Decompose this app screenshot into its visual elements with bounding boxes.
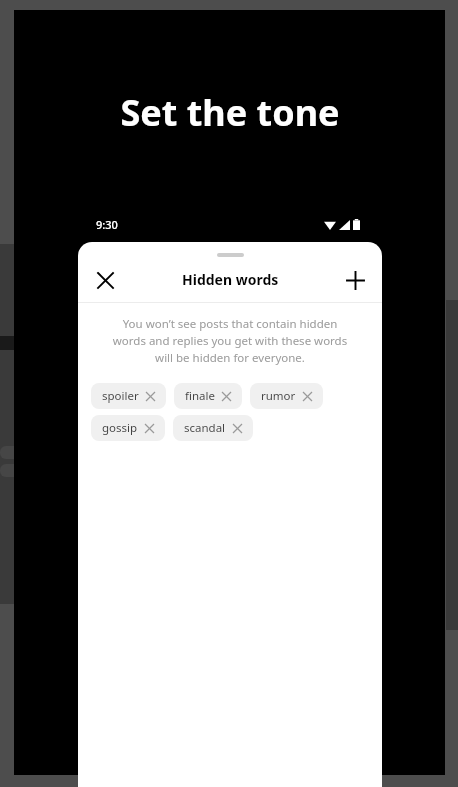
staticText: 9:30 xyxy=(96,217,118,232)
button[interactable]: Close xyxy=(88,263,122,297)
staticText: scandal xyxy=(184,420,226,436)
button[interactable]: finale xyxy=(174,383,242,409)
staticText: You won’t see posts that contain hidden … xyxy=(106,316,354,365)
staticText: Hidden words xyxy=(182,270,279,289)
staticText: gossip xyxy=(102,420,138,436)
staticText: spoiler xyxy=(102,388,139,404)
staticText: Set the tone xyxy=(120,88,340,137)
button[interactable]: spoiler xyxy=(91,383,166,409)
button[interactable]: gossip xyxy=(91,415,165,441)
staticText: finale xyxy=(185,388,215,404)
staticText: rumor xyxy=(261,388,296,404)
button[interactable]: rumor xyxy=(250,383,323,409)
button[interactable]: Add hidden word xyxy=(338,263,372,297)
button[interactable]: scandal xyxy=(173,415,253,441)
